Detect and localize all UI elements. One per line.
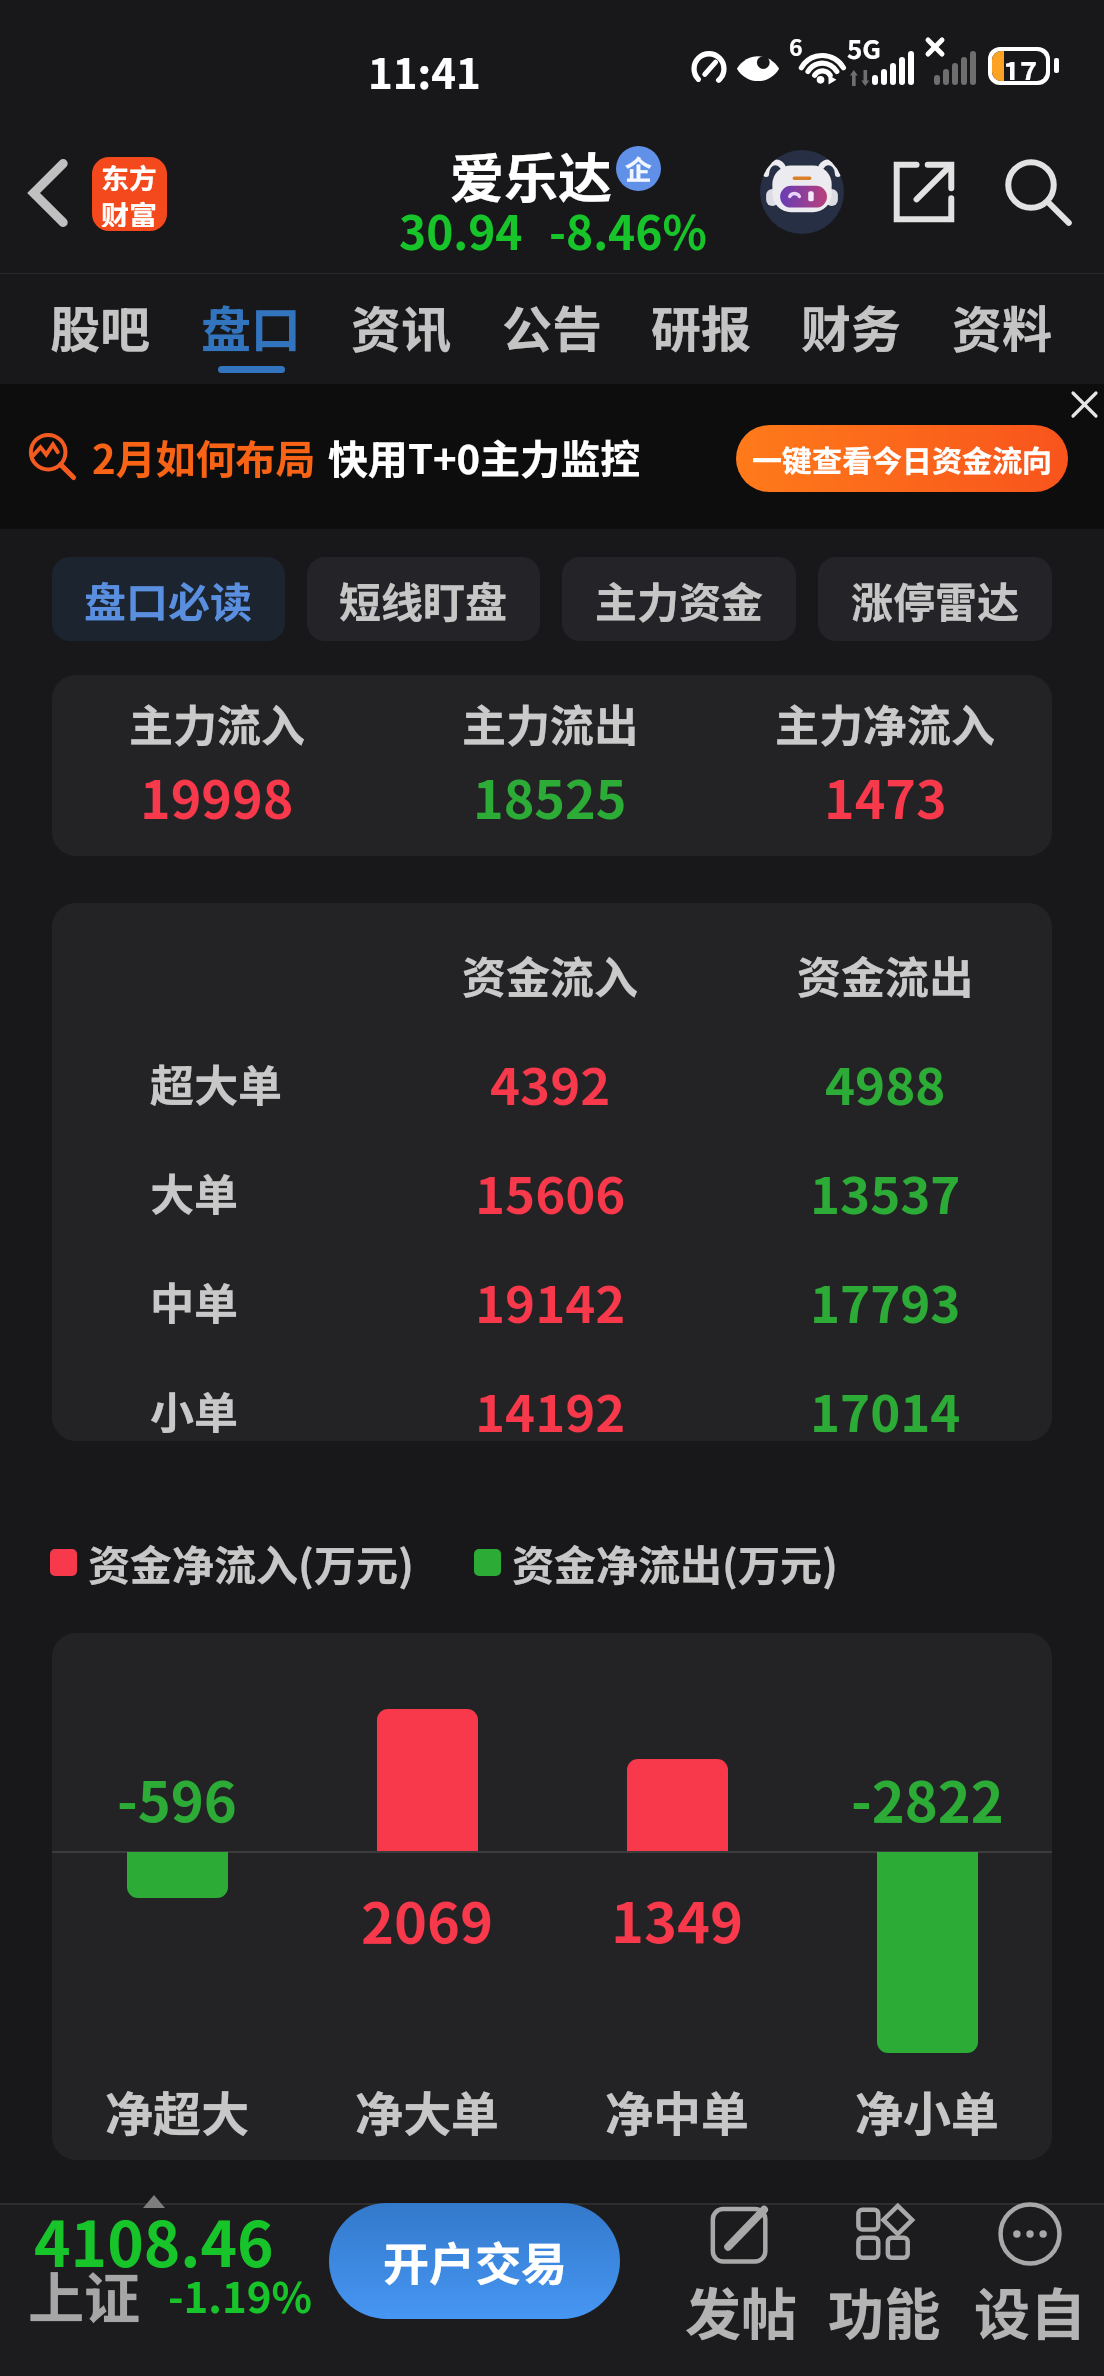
staticText: 净中单 [605,2076,750,2146]
staticText: 小单 [150,1378,238,1442]
staticText: 18525 [473,759,627,834]
staticText: 盘口必读 [84,569,253,630]
staticText: 净超大 [105,2076,250,2146]
staticText: 17 [1003,51,1038,80]
staticText: 中单 [150,1269,238,1333]
staticText: 资金净流出(万元) [512,1532,838,1593]
staticText: 上证 [28,2254,140,2335]
button[interactable]: 开户交易 [329,2203,620,2319]
staticText: 主力流出 [462,691,638,755]
staticText: 15606 [475,1155,626,1229]
staticText: 涨停雷达 [851,569,1020,630]
staticText: 2069 [361,1878,494,1959]
button[interactable]: Back [4,149,92,237]
staticText: 5G [847,29,881,67]
staticText: 资金流入 [462,943,638,1007]
staticText: 4108.46 [34,2195,274,2285]
button[interactable]: 盘口 [191,286,311,386]
staticText: -1.19% [168,2264,312,2325]
staticText: 快用T+0主力监控 [328,428,641,486]
staticText: 6 [789,29,803,62]
staticText: 发帖 [685,2270,797,2351]
staticText: 盘口 [201,290,301,362]
staticText: 资金流出 [797,943,973,1007]
staticText: 主力资金 [595,569,764,630]
button[interactable]: 财务 [791,286,911,386]
button[interactable]: 设自 [960,2196,1100,2376]
staticText: 爱乐达 [450,135,612,213]
staticText: 短线盯盘 [339,569,508,630]
button[interactable]: 股吧 [40,286,160,386]
staticText: 公告 [502,290,602,362]
staticText: 1349 [611,1878,744,1959]
button[interactable]: 发帖 [671,2196,811,2376]
button[interactable]: 资料 [942,286,1062,386]
staticText: 30.94 [399,197,523,264]
staticText: 研报 [651,290,751,362]
button[interactable]: 涨停雷达 [818,557,1052,641]
staticText: 开户交易 [383,2228,567,2295]
staticText: -2822 [851,1757,1004,1838]
staticText: 14192 [475,1373,626,1447]
staticText: 股吧 [50,290,150,362]
button[interactable]: AI assistant [756,146,848,238]
staticText: 资讯 [351,290,451,362]
staticText: 1473 [824,759,947,834]
button[interactable]: Search [992,146,1084,238]
staticText: 净大单 [355,2076,500,2146]
staticText: 19998 [140,759,294,834]
staticText: 4988 [825,1046,946,1120]
button[interactable]: 功能 [814,2196,954,2376]
staticText: -596 [117,1757,237,1838]
staticText: 财富 [101,194,158,227]
staticText: 17793 [810,1264,961,1338]
staticText: 2月如何布局 [92,428,316,486]
staticText: 11:41 [368,40,481,101]
staticText: 19142 [475,1264,626,1338]
staticText: 设自 [974,2270,1086,2351]
button[interactable]: East Money home [92,157,167,231]
staticText: 超大单 [150,1051,282,1115]
button[interactable]: 主力资金 [562,557,796,641]
button[interactable]: 资讯 [341,286,461,386]
staticText: 净小单 [855,2076,1000,2146]
staticText: 4392 [490,1046,611,1120]
staticText: 资料 [952,290,1052,362]
button[interactable]: 公告 [492,286,612,386]
button[interactable]: 一键查看今日资金流向 [736,425,1068,492]
staticText: 资金净流入(万元) [88,1532,414,1593]
button[interactable]: Share [878,146,970,238]
button[interactable]: Close ad [1058,378,1104,430]
staticText: 企 [625,149,652,188]
staticText: 主力净流入 [775,691,995,755]
button[interactable]: 盘口必读 [52,557,285,641]
staticText: 17014 [810,1373,961,1447]
staticText: 财务 [801,290,901,362]
staticText: 功能 [828,2270,940,2351]
staticText: 一键查看今日资金流向 [752,437,1052,480]
button[interactable]: 短线盯盘 [307,557,540,641]
staticText: 13537 [810,1155,961,1229]
staticText: 大单 [150,1160,238,1224]
staticText: 主力流入 [129,691,305,755]
staticText: 东方 [101,157,158,198]
staticText: -8.46% [549,197,707,264]
button[interactable]: 研报 [641,286,761,386]
